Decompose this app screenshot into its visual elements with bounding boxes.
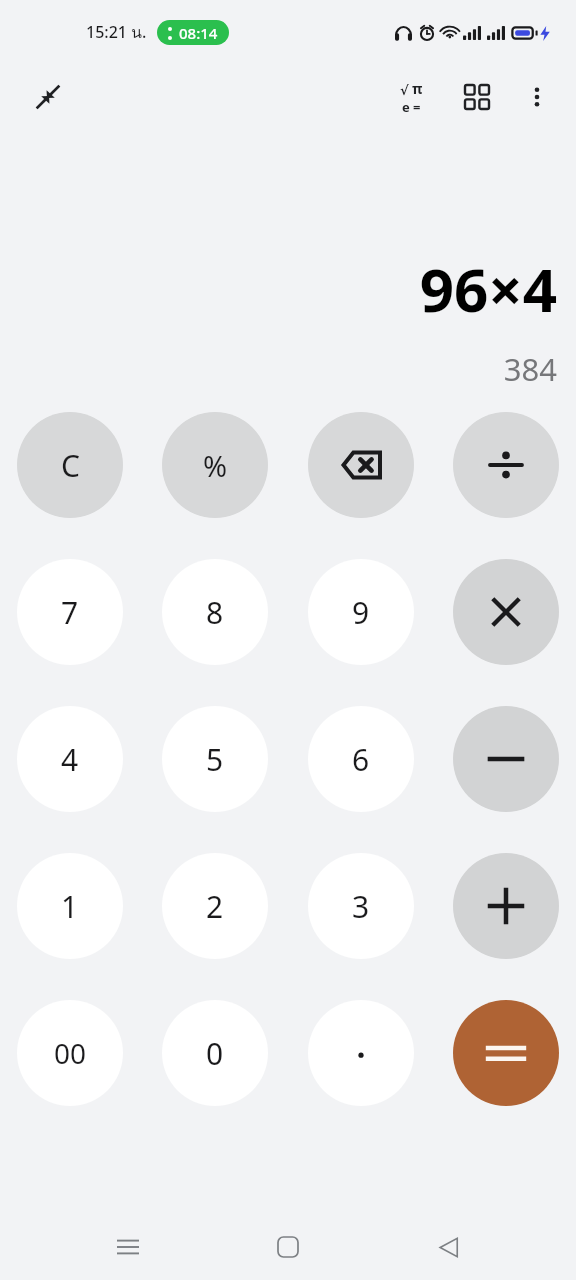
button[interactable]: 0 bbox=[162, 1000, 268, 1106]
button[interactable]: More options bbox=[510, 70, 564, 124]
button[interactable]: Back bbox=[416, 1215, 480, 1279]
button[interactable]: Recent apps bbox=[96, 1215, 160, 1279]
button[interactable]: Collapse bbox=[22, 71, 74, 123]
staticText: 7 bbox=[61, 592, 79, 633]
button[interactable]: Scientific functions bbox=[384, 70, 438, 124]
button[interactable]: 4 bbox=[17, 706, 123, 812]
staticText: % bbox=[203, 446, 228, 485]
button[interactable]: Home bbox=[256, 1215, 320, 1279]
staticText: 2 bbox=[206, 886, 224, 927]
button[interactable]: 2 bbox=[162, 853, 268, 959]
staticText: 3 bbox=[352, 886, 370, 927]
button[interactable]: 7 bbox=[17, 559, 123, 665]
button[interactable]: 5 bbox=[162, 706, 268, 812]
button[interactable]: Minus bbox=[453, 706, 559, 812]
staticText: e bbox=[402, 98, 410, 116]
button[interactable]: 1 bbox=[17, 853, 123, 959]
button[interactable]: 8 bbox=[162, 559, 268, 665]
button[interactable]: C bbox=[17, 412, 123, 518]
button[interactable]: Decimal point bbox=[308, 1000, 414, 1106]
staticText: 5 bbox=[206, 739, 224, 780]
button[interactable]: Multiply bbox=[453, 559, 559, 665]
button[interactable]: 3 bbox=[308, 853, 414, 959]
button[interactable]: % bbox=[162, 412, 268, 518]
staticText: 15:21 น. bbox=[86, 20, 147, 45]
staticText: 00 bbox=[54, 1034, 87, 1072]
button[interactable]: Backspace bbox=[308, 412, 414, 518]
staticText: = bbox=[413, 98, 421, 116]
button[interactable]: Plus bbox=[453, 853, 559, 959]
button[interactable]: 00 bbox=[17, 1000, 123, 1106]
staticText: √ bbox=[400, 83, 409, 98]
staticText: 4 bbox=[61, 739, 79, 780]
staticText: 1 bbox=[61, 886, 79, 927]
staticText: C bbox=[61, 445, 80, 486]
staticText: 8 bbox=[206, 592, 224, 633]
button[interactable]: History bbox=[450, 70, 504, 124]
staticText: 6 bbox=[352, 739, 370, 780]
button[interactable]: 9 bbox=[308, 559, 414, 665]
button[interactable]: Equals bbox=[453, 1000, 559, 1106]
staticText: 0 bbox=[206, 1033, 224, 1074]
button[interactable]: 6 bbox=[308, 706, 414, 812]
staticText: π bbox=[412, 79, 423, 98]
button[interactable]: Divide bbox=[453, 412, 559, 518]
staticText: 08:14 bbox=[179, 23, 218, 43]
staticText: 96×4 bbox=[419, 248, 557, 330]
staticText: 9 bbox=[352, 592, 370, 633]
staticText: 384 bbox=[503, 348, 557, 390]
